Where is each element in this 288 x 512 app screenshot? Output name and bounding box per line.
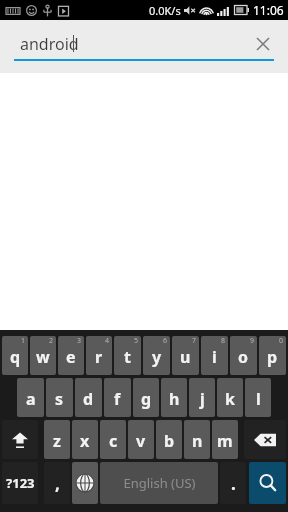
staticText: 9 [250,336,255,346]
staticText: . [231,472,236,495]
staticText: r [95,346,103,368]
button[interactable]: k [217,378,243,417]
button[interactable]: b [156,420,182,459]
button[interactable]: l [245,378,271,417]
staticText: 11:06 [253,2,284,18]
staticText: a [26,388,36,410]
staticText: n [192,430,203,452]
button[interactable]: z [44,420,70,459]
staticText: 0.0K/s [149,3,181,18]
button[interactable]: 3 [58,336,84,375]
button[interactable]: v [128,420,154,459]
staticText: English (US) [123,474,196,492]
button[interactable]: s [46,378,73,417]
staticText: q [10,346,21,368]
staticText: p [267,346,278,368]
staticText: u [180,346,191,368]
staticText: c [109,430,118,452]
staticText: 8 [221,336,226,346]
staticText: l [256,388,261,410]
staticText: 4 [105,336,110,346]
staticText: x [80,430,90,452]
staticText: 7 [192,336,197,346]
staticText: 0 [279,336,284,346]
staticText: i [212,346,217,368]
staticText: j [200,388,205,410]
staticText: t [124,346,131,368]
staticText: 1 [21,336,26,346]
button[interactable]: 5 [114,336,141,375]
staticText: w [36,346,50,368]
button[interactable]: c [100,420,126,459]
button[interactable]: h [161,378,187,417]
button[interactable]: Backspace [244,420,286,459]
button[interactable]: Search [249,462,286,504]
button[interactable]: Space [100,462,218,504]
button[interactable]: Comma [44,462,70,504]
button[interactable]: 2 [30,336,56,375]
staticText: f [114,388,121,410]
button[interactable]: Change keyboard language [72,462,98,504]
button[interactable]: g [133,378,159,417]
button[interactable]: x [72,420,98,459]
button[interactable]: Shift [2,420,38,459]
staticText: 2 [49,336,54,346]
staticText: b [164,430,175,452]
button[interactable]: j [189,378,215,417]
staticText: o [238,346,249,368]
staticText: ?123 [6,474,35,492]
staticText: d [83,388,94,410]
button[interactable]: a [17,378,44,417]
staticText: android [20,33,79,55]
staticText: z [53,430,61,452]
staticText: h [169,388,180,410]
staticText: e [66,346,76,368]
button[interactable]: 6 [143,336,170,375]
button[interactable]: Clear query [250,31,276,57]
button[interactable]: f [104,378,131,417]
staticText: , [55,472,60,495]
button[interactable]: Period [220,462,246,504]
button[interactable]: m [212,420,238,459]
staticText: s [55,388,64,410]
staticText: v [136,430,146,452]
button[interactable]: Symbols [2,462,38,504]
staticText: k [225,388,235,410]
staticText: g [141,388,152,410]
button[interactable]: 8 [201,336,228,375]
button[interactable]: 0 [259,336,286,375]
staticText: 6 [163,336,168,346]
button[interactable]: d [75,378,102,417]
button[interactable]: n [184,420,210,459]
button[interactable]: 7 [172,336,199,375]
staticText: 5 [134,336,139,346]
button[interactable]: 1 [2,336,28,375]
button[interactable]: 4 [86,336,112,375]
button[interactable]: 9 [230,336,257,375]
staticText: m [217,430,233,452]
staticText: 3 [77,336,82,346]
staticText: y [152,346,162,368]
